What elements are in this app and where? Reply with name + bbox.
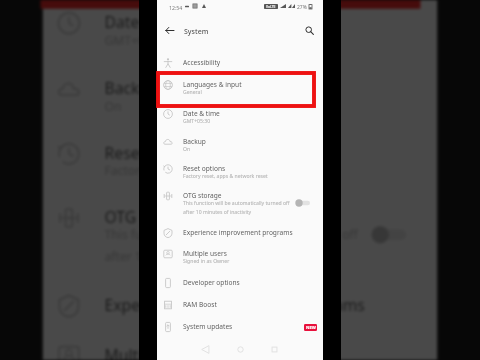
staticText: VoLTE <box>266 4 276 9</box>
staticText: General <box>183 89 202 96</box>
button[interactable]: Reset options <box>43 125 437 187</box>
staticText: System <box>184 27 209 37</box>
button[interactable]: Back <box>161 22 178 39</box>
button[interactable]: Backup <box>157 130 323 156</box>
staticText: Backup <box>105 78 159 99</box>
staticText: Multiple users <box>183 249 227 258</box>
button[interactable]: Reset options <box>157 157 323 183</box>
staticText: after 10 minutes of inactivity <box>105 249 269 265</box>
staticText: GMT+05:30 <box>183 118 211 125</box>
button[interactable]: Experience improvement programs <box>43 277 437 339</box>
button[interactable]: Back <box>197 341 213 357</box>
button[interactable]: OTG storage toggle <box>295 199 310 207</box>
button[interactable]: Multiple users <box>157 242 323 268</box>
button[interactable]: Home <box>232 341 248 357</box>
staticText: On <box>183 146 191 153</box>
button[interactable]: Search <box>301 22 318 39</box>
staticText: Date & time <box>105 11 192 33</box>
staticText: Multiple users <box>105 344 209 360</box>
staticText: RAM Boost <box>183 300 217 309</box>
button[interactable]: Experience improvement programs <box>157 221 323 247</box>
staticText: Experience improvement programs <box>105 294 366 315</box>
staticText: Factory reset, apps & network reset <box>183 173 268 180</box>
staticText: Experience improvement programs <box>183 228 293 237</box>
staticText: Languages & input <box>183 80 242 89</box>
staticText: Accessibility <box>183 58 221 67</box>
button[interactable]: Date & time <box>43 0 437 56</box>
button[interactable]: Languages & input <box>157 73 323 99</box>
staticText: NEW <box>306 325 316 331</box>
staticText: Reset options <box>183 164 226 173</box>
button[interactable]: RAM Boost <box>157 293 323 319</box>
staticText: OTG storage <box>105 206 197 227</box>
staticText: This function will be automatically turn… <box>183 200 290 207</box>
button[interactable]: Recents <box>266 341 282 357</box>
button[interactable]: Developer options <box>157 271 323 297</box>
button[interactable]: OTG storage <box>43 189 437 261</box>
staticText: OTG storage <box>183 191 222 200</box>
staticText: 27% <box>297 4 307 11</box>
staticText: Date & time <box>183 109 220 118</box>
button[interactable]: Backup <box>43 61 437 123</box>
button[interactable]: Accessibility <box>157 51 323 77</box>
staticText: Factory reset, apps & network reset <box>105 163 307 180</box>
staticText: after 10 minutes of inactivity <box>183 209 252 216</box>
button[interactable]: Date & time <box>157 102 323 128</box>
button[interactable]: Multiple users <box>43 327 437 360</box>
staticText: Reset options <box>105 142 207 163</box>
staticText: System updates <box>183 322 233 331</box>
staticText: This function will be automatically turn… <box>105 227 359 244</box>
button[interactable]: OTG storage <box>157 184 323 214</box>
staticText: GMT+05:30 <box>105 33 171 49</box>
staticText: Backup <box>183 137 206 146</box>
staticText: 12:54 <box>169 4 183 11</box>
button[interactable]: OTG storage toggle <box>371 225 406 244</box>
button[interactable]: System updates <box>157 315 323 341</box>
staticText: Developer options <box>183 278 240 287</box>
staticText: Signed in as Owner <box>183 258 230 265</box>
